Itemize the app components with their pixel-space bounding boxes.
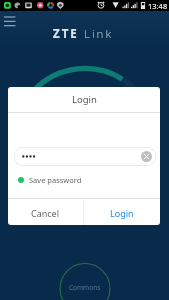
staticText: Link: [79, 26, 114, 42]
staticText: Login: [110, 207, 134, 219]
staticText: Login: [72, 93, 97, 106]
button[interactable]: Menu: [1, 12, 19, 30]
staticText: 13:48: [148, 1, 168, 11]
button[interactable]: Cancel: [8, 201, 83, 225]
staticText: Cancel: [31, 207, 60, 219]
staticText: Save password: [29, 175, 82, 185]
button[interactable]: Clear: [14, 147, 156, 166]
staticText: Commons: [69, 283, 101, 292]
button[interactable]: Clear: [141, 151, 152, 162]
button[interactable]: Login: [84, 201, 160, 225]
staticText: ZTE: [53, 26, 79, 42]
button[interactable]: Save password: [18, 173, 160, 187]
